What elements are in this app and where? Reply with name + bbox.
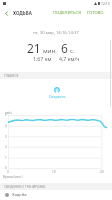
staticText: ГОТОВО xyxy=(87,10,104,16)
staticText: 21 xyxy=(27,40,41,56)
staticText: 6 xyxy=(61,40,68,56)
staticText: 12:13 xyxy=(101,1,110,6)
staticText: км/ч xyxy=(5,111,12,115)
staticText: 4,7 км/ч xyxy=(59,55,80,62)
staticText: Ходьба xyxy=(12,192,27,198)
staticText: Время (мин.) xyxy=(3,175,23,179)
staticText: 10 xyxy=(52,170,56,174)
button[interactable]: Скорость xyxy=(1,87,112,99)
staticText: Скорость xyxy=(49,94,66,99)
button[interactable]: Назад xyxy=(0,7,13,19)
staticText: 4 xyxy=(5,124,7,128)
staticText: 0 xyxy=(7,170,9,174)
staticText: ПОДЕЛИТЬСЯ xyxy=(53,10,81,16)
button[interactable]: Ходьба xyxy=(5,190,112,200)
staticText: ХОДЬБА xyxy=(13,10,32,16)
button[interactable]: ПОДЕЛИТЬСЯ xyxy=(52,10,82,16)
staticText: ГЛАВНОЕ xyxy=(4,74,19,78)
staticText: мин. xyxy=(43,46,57,54)
staticText: 5 xyxy=(5,113,7,117)
staticText: 2 xyxy=(5,145,7,149)
staticText: пт, 30 мар, 14:16-14:37 xyxy=(0,30,112,36)
staticText: 1,67 км xyxy=(33,55,52,62)
staticText: 3 xyxy=(5,135,7,139)
staticText: 1 xyxy=(5,156,7,160)
staticText: с. xyxy=(70,46,75,54)
staticText: 0 xyxy=(5,166,7,170)
staticText: СВЕДЕНИЯ О ТРЕНИРОВКЕ xyxy=(4,185,46,189)
staticText: 20 xyxy=(100,170,104,174)
button[interactable]: ГОТОВО xyxy=(86,10,105,16)
